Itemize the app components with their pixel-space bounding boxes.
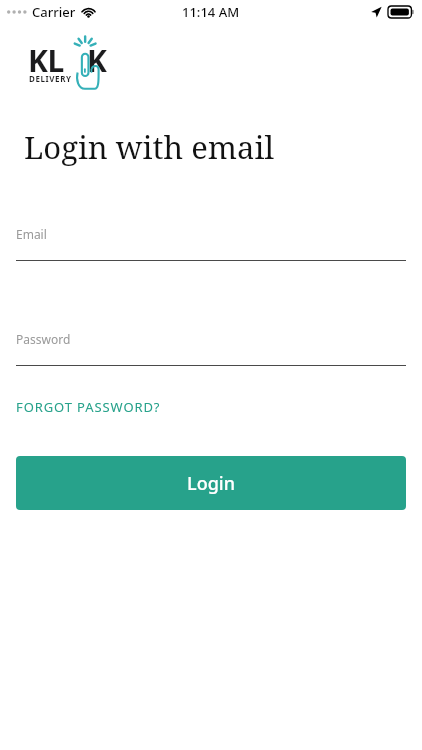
staticText: K — [87, 40, 107, 81]
staticText: KL — [28, 40, 64, 81]
button[interactable]: Password — [0, 331, 422, 366]
button[interactable]: Login — [16, 456, 406, 510]
button[interactable]: FORGOT PASSWORD? — [16, 396, 161, 418]
staticText: 11:14 AM — [182, 3, 240, 21]
staticText: Password — [16, 331, 71, 347]
button[interactable]: Email — [0, 226, 422, 261]
staticText: DELIVERY — [29, 73, 72, 84]
staticText: Login with email — [24, 126, 275, 168]
staticText: Login — [187, 471, 235, 496]
staticText: Carrier — [32, 3, 76, 21]
staticText: Email — [16, 226, 47, 242]
